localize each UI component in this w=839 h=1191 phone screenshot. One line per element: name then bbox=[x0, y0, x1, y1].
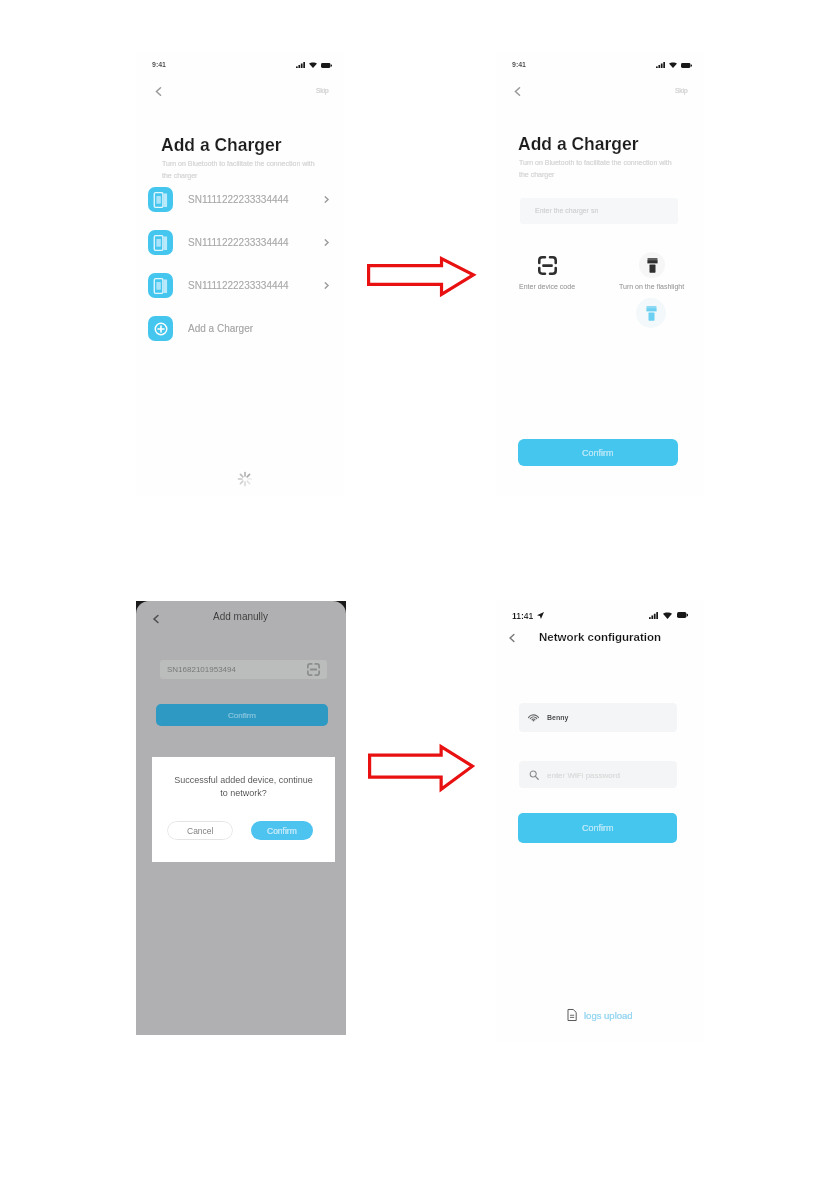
button[interactable]: enter WiFi password bbox=[519, 761, 677, 788]
button[interactable]: Confirm bbox=[518, 813, 677, 843]
staticText: SN1682101953494 bbox=[167, 665, 236, 674]
button[interactable]: SN1111222233334444 bbox=[148, 230, 332, 255]
staticText: logs upload bbox=[584, 1010, 633, 1021]
button[interactable]: Confirm bbox=[251, 821, 313, 840]
staticText: Turn on Bluetooth to facilitate the conn… bbox=[519, 159, 672, 178]
staticText: Confirm bbox=[228, 711, 257, 720]
staticText: Enter device code bbox=[519, 283, 576, 291]
button[interactable]: Back bbox=[509, 83, 526, 100]
staticText: Enter the charger sn bbox=[535, 207, 599, 215]
button[interactable]: Flashlight on bbox=[636, 298, 666, 328]
staticText: Benny bbox=[547, 714, 569, 722]
staticText: enter WiFi password bbox=[547, 771, 620, 780]
button[interactable]: Skip bbox=[675, 87, 688, 94]
staticText: Successful added device, continue to net… bbox=[174, 775, 313, 798]
staticText: Turn on Bluetooth to facilitate the conn… bbox=[162, 160, 315, 179]
staticText: 11:41 bbox=[512, 611, 534, 620]
staticText: Add a Charger bbox=[188, 323, 254, 334]
staticText: 9:41 bbox=[512, 61, 527, 69]
staticText: Cancel bbox=[187, 826, 214, 835]
button[interactable]: Skip bbox=[316, 87, 329, 94]
button[interactable]: Add a Charger bbox=[148, 316, 332, 341]
button[interactable]: Benny bbox=[519, 703, 677, 732]
staticText: SN1111222233334444 bbox=[188, 237, 289, 248]
button[interactable]: SN1682101953494 bbox=[160, 660, 327, 679]
staticText: SN1111222233334444 bbox=[188, 194, 289, 205]
staticText: Add a Charger bbox=[161, 135, 282, 155]
button[interactable]: Enter the charger sn bbox=[520, 198, 678, 224]
staticText: Confirm bbox=[582, 448, 614, 458]
button[interactable]: SN1111222233334444 bbox=[148, 273, 332, 298]
button[interactable]: Back bbox=[150, 83, 167, 100]
staticText: 9:41 bbox=[152, 61, 167, 69]
button[interactable]: Back bbox=[504, 630, 520, 646]
button[interactable]: Back bbox=[148, 611, 164, 627]
staticText: Add manully bbox=[213, 611, 269, 622]
staticText: Network configuration bbox=[539, 631, 662, 644]
button[interactable]: Cancel bbox=[167, 821, 233, 840]
staticText: Turn on the flashlight bbox=[619, 283, 685, 291]
button[interactable]: Confirm bbox=[518, 439, 678, 466]
staticText: Skip bbox=[675, 87, 688, 94]
button[interactable]: logs upload bbox=[556, 1009, 644, 1021]
button[interactable]: Turn on the flashlight bbox=[606, 252, 697, 291]
button[interactable]: Confirm bbox=[156, 704, 328, 726]
button[interactable]: Enter device code bbox=[507, 252, 587, 291]
staticText: Confirm bbox=[582, 823, 614, 833]
staticText: Confirm bbox=[267, 826, 297, 835]
staticText: SN1111222233334444 bbox=[188, 280, 289, 291]
staticText: Skip bbox=[316, 87, 329, 94]
button[interactable]: SN1111222233334444 bbox=[148, 187, 332, 212]
button[interactable]: Scan code bbox=[307, 663, 320, 676]
staticText: Add a Charger bbox=[518, 134, 639, 154]
